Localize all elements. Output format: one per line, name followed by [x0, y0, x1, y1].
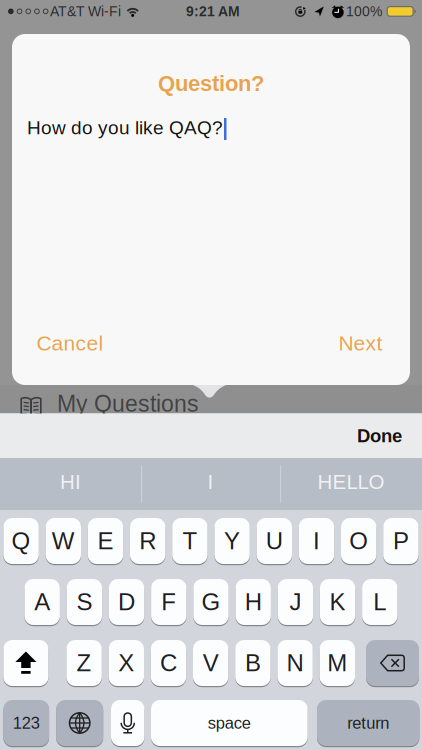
- button[interactable]: S: [67, 579, 102, 625]
- button[interactable]: W: [46, 518, 81, 564]
- staticText: Cancel: [37, 331, 104, 355]
- staticText: Done: [357, 425, 402, 446]
- button[interactable]: Dictate: [111, 700, 144, 746]
- staticText: O: [349, 528, 368, 554]
- staticText: H: [245, 589, 262, 615]
- button[interactable]: J: [278, 579, 313, 625]
- button[interactable]: X: [109, 640, 144, 686]
- staticText: V: [203, 650, 219, 676]
- staticText: How do you like QAQ?: [27, 117, 223, 138]
- staticText: M: [327, 650, 347, 676]
- button[interactable]: E: [88, 518, 123, 564]
- staticText: Q: [12, 528, 31, 554]
- staticText: U: [266, 528, 283, 554]
- staticText: 100%: [346, 4, 382, 19]
- button[interactable]: O: [341, 518, 376, 564]
- button[interactable]: Shift: [3, 640, 48, 686]
- staticText: 9:21 AM: [186, 4, 240, 19]
- button[interactable]: A: [24, 579, 60, 625]
- button[interactable]: return: [317, 700, 419, 746]
- button[interactable]: Done: [357, 425, 422, 446]
- button[interactable]: Z: [66, 640, 102, 686]
- button[interactable]: Cancel: [29, 323, 112, 363]
- button[interactable]: M: [320, 640, 355, 686]
- button[interactable]: T: [172, 518, 208, 564]
- staticText: R: [139, 528, 156, 554]
- staticText: S: [76, 589, 92, 615]
- button[interactable]: C: [151, 640, 186, 686]
- button[interactable]: K: [320, 579, 355, 625]
- staticText: Z: [77, 650, 92, 676]
- button[interactable]: V: [193, 640, 228, 686]
- button[interactable]: space: [151, 700, 308, 746]
- staticText: X: [118, 650, 134, 676]
- button[interactable]: HELLO: [280, 458, 422, 510]
- staticText: C: [160, 650, 177, 676]
- button[interactable]: R: [130, 518, 165, 564]
- button[interactable]: Q: [3, 518, 39, 564]
- staticText: A: [34, 589, 50, 615]
- button[interactable]: N: [277, 640, 313, 686]
- staticText: Next: [338, 331, 382, 355]
- staticText: I: [313, 528, 320, 554]
- button[interactable]: Next: [330, 323, 390, 363]
- button[interactable]: P: [383, 518, 419, 564]
- staticText: 123: [13, 714, 40, 732]
- button[interactable]: F: [151, 579, 186, 625]
- staticText: B: [245, 650, 261, 676]
- staticText: I: [207, 470, 213, 493]
- button[interactable]: I: [299, 518, 334, 564]
- button[interactable]: L: [362, 579, 397, 625]
- staticText: return: [347, 714, 389, 732]
- button[interactable]: Next keyboard: [56, 700, 103, 746]
- button[interactable]: I: [141, 458, 280, 510]
- staticText: P: [393, 528, 409, 554]
- staticText: N: [287, 650, 304, 676]
- staticText: T: [182, 528, 197, 554]
- staticText: K: [330, 589, 346, 615]
- button[interactable]: Y: [214, 518, 250, 564]
- staticText: My Questions: [57, 391, 199, 417]
- button[interactable]: U: [257, 518, 292, 564]
- staticText: HELLO: [317, 470, 384, 493]
- button[interactable]: Numbers: [3, 700, 49, 746]
- button[interactable]: HI: [0, 458, 141, 510]
- staticText: Y: [224, 528, 240, 554]
- button[interactable]: B: [235, 640, 271, 686]
- staticText: space: [208, 714, 251, 732]
- staticText: E: [97, 528, 113, 554]
- staticText: J: [289, 589, 301, 615]
- staticText: L: [373, 589, 386, 615]
- staticText: AT&T Wi-Fi: [50, 4, 121, 19]
- button[interactable]: D: [109, 579, 144, 625]
- button[interactable]: Delete: [366, 640, 419, 686]
- staticText: W: [52, 528, 75, 554]
- button[interactable]: H: [235, 579, 271, 625]
- staticText: HI: [60, 470, 81, 493]
- staticText: F: [161, 589, 176, 615]
- staticText: D: [118, 589, 135, 615]
- button[interactable]: G: [193, 579, 229, 625]
- staticText: G: [201, 589, 220, 615]
- staticText: Question?: [158, 71, 264, 96]
